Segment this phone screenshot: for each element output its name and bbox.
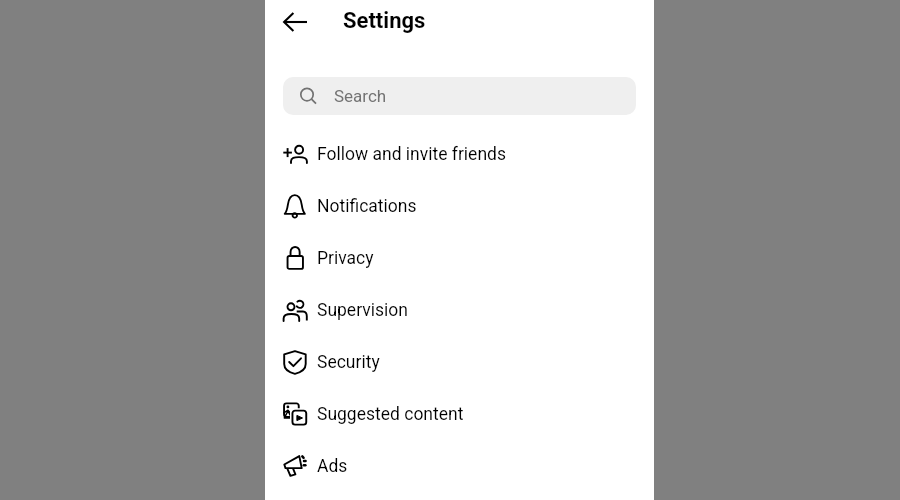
- button[interactable]: Search: [283, 77, 636, 115]
- button[interactable]: Follow and invite friends: [265, 128, 654, 180]
- staticText: Security: [317, 352, 380, 373]
- staticText: Supervision: [317, 300, 408, 321]
- button[interactable]: Privacy: [265, 232, 654, 284]
- staticText: Follow and invite friends: [317, 144, 506, 165]
- button[interactable]: Security: [265, 336, 654, 388]
- button[interactable]: Back: [277, 4, 313, 40]
- staticText: Settings: [343, 8, 426, 34]
- staticText: Search: [334, 86, 387, 106]
- staticText: Notifications: [317, 196, 417, 217]
- button[interactable]: Supervision: [265, 284, 654, 336]
- button[interactable]: Ads: [265, 440, 654, 492]
- button[interactable]: Notifications: [265, 180, 654, 232]
- staticText: Suggested content: [317, 404, 464, 425]
- staticText: Privacy: [317, 248, 374, 269]
- staticText: Ads: [317, 456, 348, 477]
- button[interactable]: Suggested content: [265, 388, 654, 440]
